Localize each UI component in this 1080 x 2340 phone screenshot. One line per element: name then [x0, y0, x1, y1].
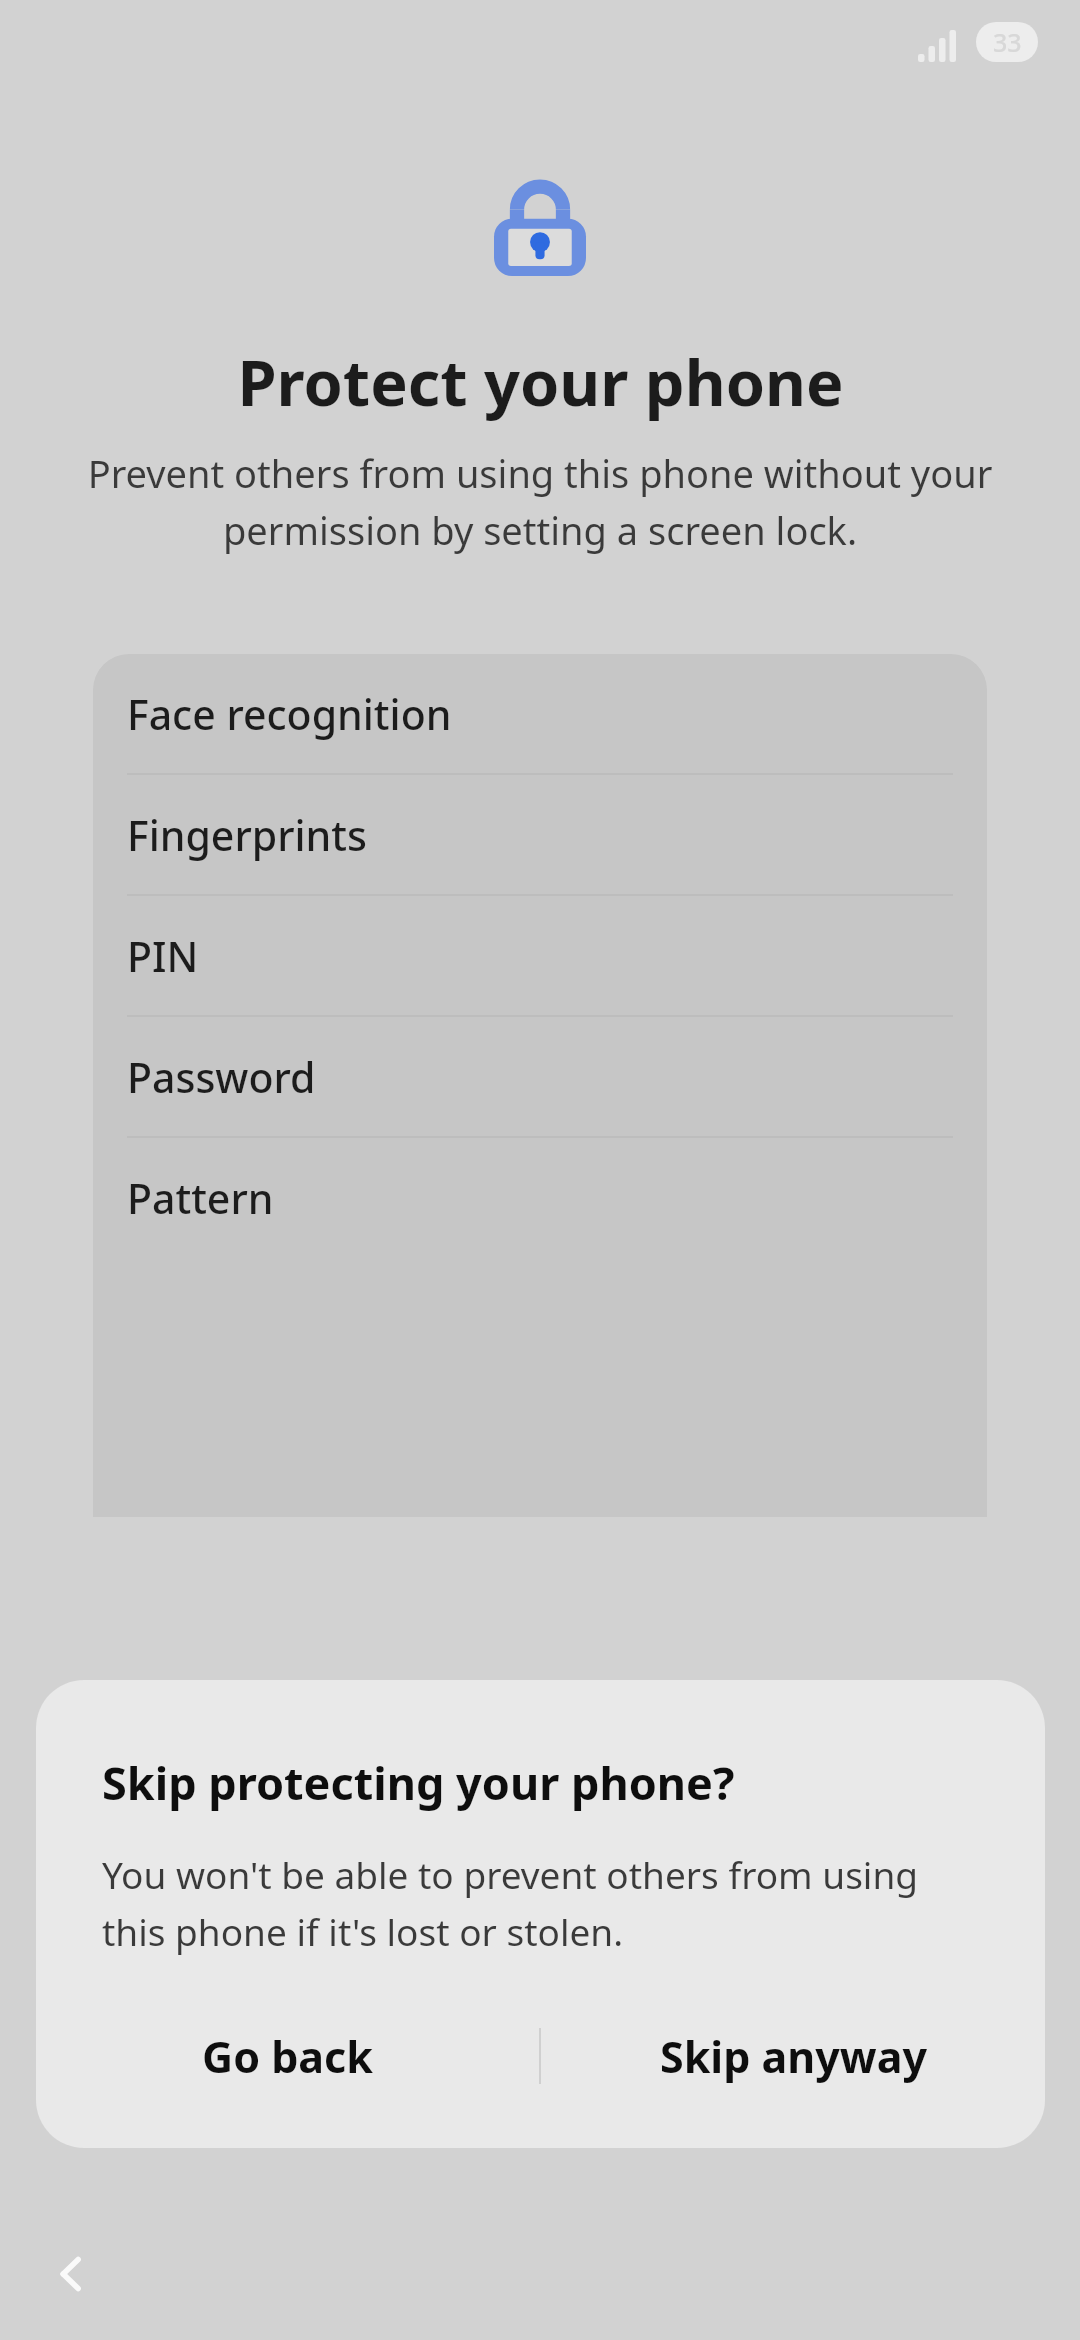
- other: Screen lock: [494, 178, 586, 276]
- staticText: Password: [127, 1049, 316, 1105]
- staticText: Go back: [202, 2027, 373, 2086]
- staticText: Pattern: [127, 1170, 274, 1226]
- staticText: Face recognition: [127, 686, 452, 742]
- staticText: PIN: [127, 928, 199, 984]
- button[interactable]: Password: [93, 1017, 987, 1136]
- staticText: Fingerprints: [127, 807, 367, 863]
- button[interactable]: Skip anyway: [541, 2001, 1045, 2111]
- staticText: Skip anyway: [660, 2027, 927, 2086]
- button[interactable]: Pattern: [93, 1138, 987, 1257]
- button[interactable]: Go back: [36, 2001, 539, 2111]
- button[interactable]: PIN: [93, 896, 987, 1015]
- staticText: You won't be able to prevent others from…: [102, 1849, 989, 1957]
- staticText: 33: [993, 25, 1022, 59]
- button[interactable]: Face recognition: [93, 654, 987, 773]
- staticText: Protect your phone: [237, 339, 844, 425]
- button[interactable]: Back: [36, 2238, 108, 2310]
- button[interactable]: Fingerprints: [93, 775, 987, 894]
- staticText: Prevent others from using this phone wit…: [86, 447, 994, 556]
- staticText: Skip protecting your phone?: [102, 1752, 735, 1813]
